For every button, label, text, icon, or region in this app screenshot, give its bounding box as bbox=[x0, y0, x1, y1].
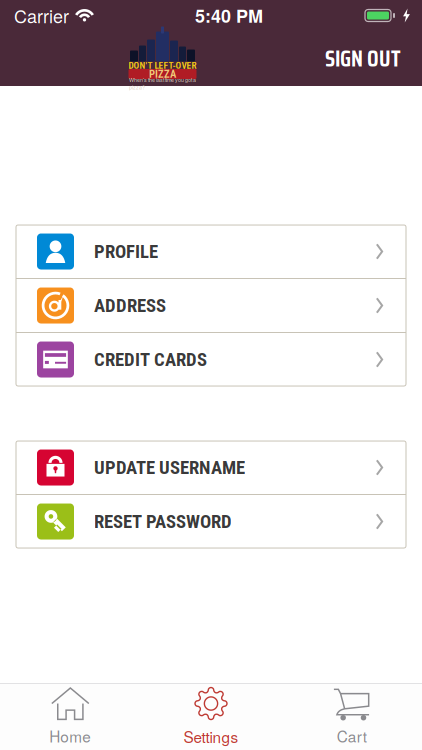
staticText: UPDATE USERNAME bbox=[94, 457, 245, 478]
staticText: RESET PASSWORD bbox=[94, 511, 232, 532]
staticText: SIGN OUT bbox=[325, 41, 401, 76]
staticText: DON'T LEFT-OVER bbox=[128, 60, 196, 71]
staticText: Home bbox=[49, 725, 91, 747]
button[interactable]: Home bbox=[0, 684, 141, 750]
button[interactable]: PROFILE bbox=[16, 225, 406, 278]
staticText: Cart bbox=[337, 725, 367, 747]
button[interactable]: UPDATE USERNAME bbox=[16, 441, 406, 494]
button[interactable]: Settings bbox=[141, 684, 281, 750]
staticText: PROFILE bbox=[94, 241, 158, 262]
staticText: When's the last time you got a pizza? bbox=[129, 76, 196, 91]
staticText: ADDRESS bbox=[94, 295, 166, 316]
button[interactable]: Cart bbox=[281, 684, 422, 750]
staticText: CREDIT CARDS bbox=[94, 349, 207, 370]
staticText: Carrier bbox=[14, 3, 69, 28]
staticText: PIZZA bbox=[149, 68, 176, 80]
button[interactable]: CREDIT CARDS bbox=[16, 333, 406, 386]
staticText: 5:40 PM bbox=[195, 3, 263, 28]
staticText: Settings bbox=[183, 725, 238, 747]
button[interactable]: ADDRESS bbox=[16, 279, 406, 332]
button[interactable]: RESET PASSWORD bbox=[16, 495, 406, 548]
button[interactable]: SIGN OUT bbox=[325, 31, 422, 86]
